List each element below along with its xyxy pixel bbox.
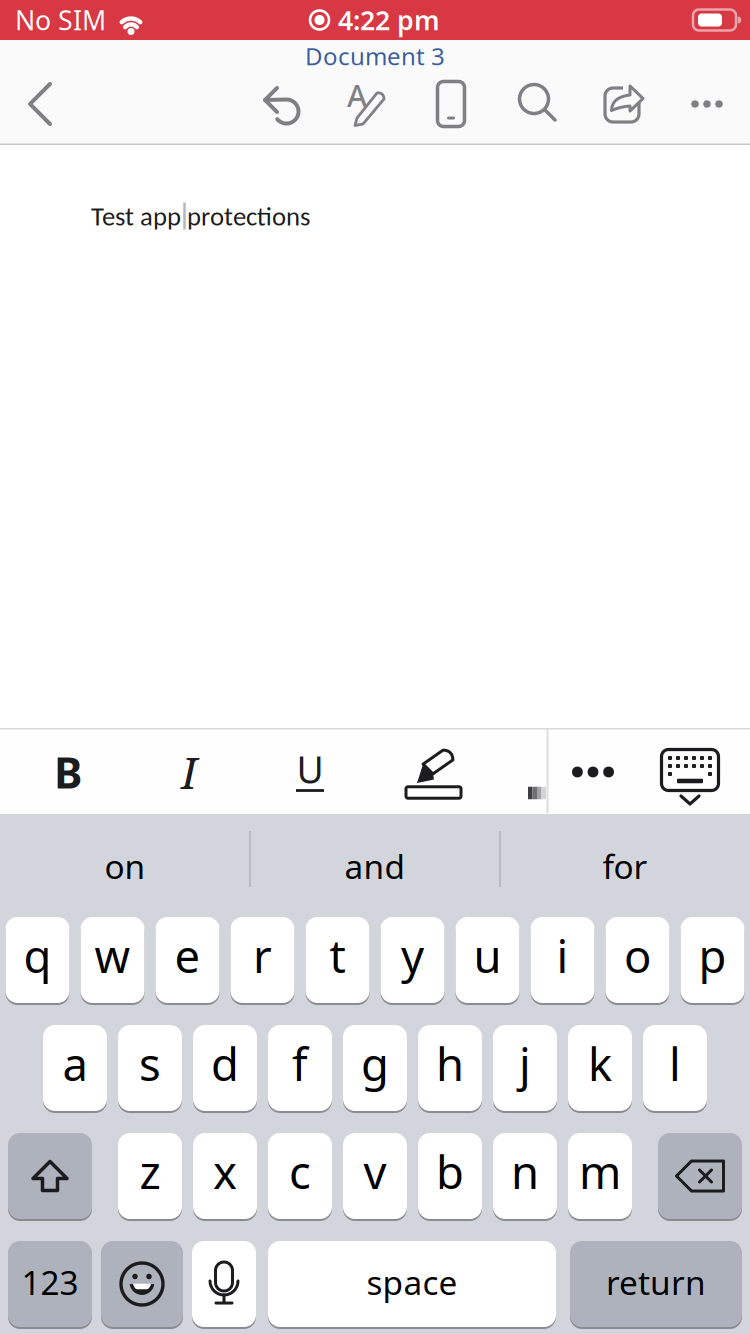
button[interactable]: r	[230, 917, 294, 1005]
button[interactable]: u	[455, 917, 519, 1005]
staticText: b	[436, 1141, 464, 1202]
button[interactable]: Hide keyboard	[648, 732, 732, 816]
staticText: w	[94, 925, 130, 986]
staticText: v	[363, 1141, 386, 1202]
button[interactable]: Bold	[18, 730, 118, 814]
button[interactable]: h	[418, 1025, 482, 1113]
button[interactable]: Shift	[8, 1133, 92, 1221]
staticText: 123	[21, 1260, 78, 1304]
button[interactable]: Italic	[139, 730, 239, 814]
button[interactable]: w	[80, 917, 144, 1005]
button[interactable]: Mobile view	[416, 69, 486, 139]
button[interactable]: t	[305, 917, 369, 1005]
button[interactable]: n	[493, 1133, 557, 1221]
button[interactable]: Undo	[246, 69, 316, 139]
button[interactable]: and	[255, 826, 495, 906]
staticText: No SIM	[15, 2, 106, 38]
staticText: and	[344, 844, 405, 888]
staticText: l	[669, 1033, 681, 1094]
button[interactable]: m	[568, 1133, 632, 1221]
button[interactable]: d	[193, 1025, 257, 1113]
staticText: s	[139, 1033, 161, 1094]
staticText: q	[23, 925, 51, 986]
staticText: x	[213, 1141, 237, 1202]
staticText: A	[347, 75, 367, 115]
button[interactable]: Share	[587, 69, 657, 139]
button[interactable]: b	[418, 1133, 482, 1221]
button[interactable]: Search	[502, 69, 572, 139]
button[interactable]: Back	[7, 69, 77, 139]
staticText: I	[181, 742, 197, 802]
staticText: h	[436, 1033, 464, 1094]
staticText: U	[296, 744, 323, 794]
staticText: y	[401, 925, 424, 986]
staticText: space	[366, 1260, 457, 1304]
staticText: k	[588, 1033, 612, 1094]
staticText: c	[289, 1141, 311, 1202]
staticText: on	[104, 844, 145, 888]
button[interactable]: f	[268, 1025, 332, 1113]
button[interactable]: s	[118, 1025, 182, 1113]
staticText: m	[579, 1141, 621, 1202]
button[interactable]: i	[530, 917, 594, 1005]
staticText: return	[606, 1260, 706, 1304]
button[interactable]: Emoji	[101, 1241, 183, 1329]
button[interactable]: k	[568, 1025, 632, 1113]
button[interactable]: j	[493, 1025, 557, 1113]
button[interactable]: g	[343, 1025, 407, 1113]
button[interactable]: More formatting	[553, 730, 633, 814]
staticText: u	[473, 925, 501, 986]
button[interactable]: z	[118, 1133, 182, 1221]
button[interactable]: e	[155, 917, 219, 1005]
button[interactable]: for	[505, 826, 745, 906]
button[interactable]: return	[570, 1241, 742, 1329]
staticText: o	[624, 925, 651, 986]
button[interactable]: v	[343, 1133, 407, 1221]
staticText: r	[253, 925, 272, 986]
staticText: for	[602, 844, 647, 888]
staticText: B	[54, 744, 82, 800]
staticText: e	[174, 925, 200, 986]
staticText: t	[329, 925, 345, 986]
button[interactable]: on	[5, 826, 245, 906]
button[interactable]: x	[193, 1133, 257, 1221]
button[interactable]: Highlight	[384, 729, 484, 813]
button[interactable]: c	[268, 1133, 332, 1221]
staticText: d	[211, 1033, 239, 1094]
button[interactable]: Format text	[331, 69, 401, 139]
button[interactable]: Screen recording	[310, 2, 440, 38]
button[interactable]: l	[643, 1025, 707, 1113]
button[interactable]: a	[43, 1025, 107, 1113]
staticText: Document 3	[305, 40, 445, 72]
staticText: z	[139, 1141, 160, 1202]
staticText: a	[62, 1033, 87, 1094]
button[interactable]: o	[605, 917, 669, 1005]
button[interactable]: p	[680, 917, 744, 1005]
staticText: p	[698, 925, 726, 986]
staticText: n	[511, 1141, 539, 1202]
staticText: g	[361, 1033, 389, 1094]
staticText: i	[556, 925, 568, 986]
staticText: Test app protections	[91, 200, 310, 233]
button[interactable]: Dictate	[192, 1241, 256, 1329]
button[interactable]: Delete	[658, 1133, 742, 1221]
button[interactable]: q	[5, 917, 69, 1005]
button[interactable]: space	[268, 1241, 556, 1329]
staticText: 4:22 pm	[338, 2, 440, 38]
button[interactable]: More	[672, 69, 742, 139]
staticText: f	[292, 1033, 308, 1094]
button[interactable]: 123	[8, 1241, 92, 1329]
staticText: j	[519, 1033, 531, 1094]
button[interactable]: y	[380, 917, 444, 1005]
button[interactable]: Underline	[260, 730, 360, 814]
